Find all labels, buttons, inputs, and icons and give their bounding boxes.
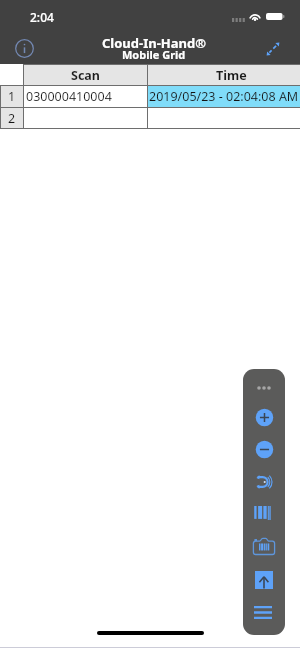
staticText: Time [216, 67, 247, 84]
staticText: Mobile Grid [122, 47, 186, 62]
staticText: 1 [8, 88, 16, 105]
button[interactable]: Menu [248, 599, 278, 625]
staticText: 030000410004 [26, 88, 112, 105]
button[interactable]: Scan barcode [247, 500, 277, 526]
button[interactable]: Add [249, 404, 279, 430]
button[interactable]: Upload [249, 567, 279, 593]
button[interactable]: Info [11, 35, 37, 61]
button[interactable]: Sync [250, 469, 280, 495]
staticText: 2019/05/23 - 02:04:08 AM [149, 88, 299, 105]
button[interactable]: Remove [249, 436, 279, 462]
staticText: Scan [71, 67, 100, 84]
staticText: Cloud-In-Hand® [102, 34, 207, 52]
button[interactable]: More [249, 375, 279, 401]
staticText: 2 [8, 110, 16, 127]
button[interactable]: 1 [0, 85, 300, 107]
staticText: 2:04 [30, 9, 54, 25]
button[interactable]: Expand [259, 35, 286, 62]
button[interactable]: 2 [0, 107, 300, 129]
button[interactable]: Camera scan [249, 533, 279, 559]
